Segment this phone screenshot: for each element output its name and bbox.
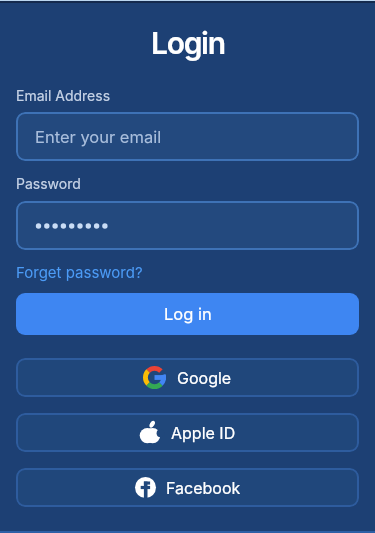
button[interactable]: Google xyxy=(16,358,359,397)
staticText: Forget password? xyxy=(16,263,143,281)
staticText: Google xyxy=(177,368,232,387)
staticText: Password xyxy=(16,175,81,192)
staticText: Enter your email xyxy=(35,127,162,147)
staticText: Log in xyxy=(164,304,212,324)
button[interactable]: Facebook xyxy=(16,468,359,507)
staticText: Login xyxy=(151,25,225,61)
staticText: Email Address xyxy=(16,87,111,104)
button[interactable] xyxy=(16,201,359,250)
staticText: Facebook xyxy=(166,478,241,497)
button[interactable]: Forget password? xyxy=(16,262,143,281)
staticText: Apple ID xyxy=(171,423,236,442)
button[interactable]: Apple ID xyxy=(16,413,359,452)
button[interactable]: Enter your email xyxy=(16,112,359,161)
button[interactable]: Log in xyxy=(16,293,359,335)
